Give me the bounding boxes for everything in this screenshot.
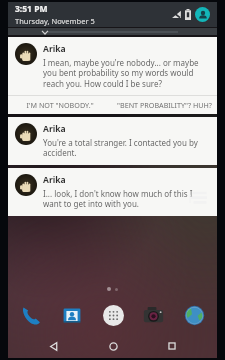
button[interactable]: User profile [195,7,210,22]
staticText: Arika [43,174,66,186]
staticText: 3:51 PM [15,3,48,15]
button[interactable]: "BENT PROBABILITY"? HUH? [112,100,217,110]
staticText: I'M NOT "NOBODY." [26,100,94,110]
staticText: I mean, maybe you're nobody... or maybe … [43,57,210,90]
staticText: Thursday, November 5 [15,16,95,26]
button[interactable]: Camera [140,302,166,328]
button[interactable]: Contacts [59,302,85,328]
button[interactable]: Arika [8,37,217,114]
button[interactable]: I'M NOT "NOBODY." [8,100,112,110]
button[interactable]: Home [98,335,128,357]
button[interactable]: Arika [8,168,217,216]
button[interactable] [8,28,217,35]
staticText: "BENT PROBABILITY"? HUH? [117,100,212,110]
button[interactable]: Recents [157,335,187,357]
staticText: I... look, I don't know how much of this… [43,188,210,210]
staticText: Arika [43,43,66,55]
button[interactable]: Phone [18,302,44,328]
button[interactable]: Arika [8,117,217,165]
button[interactable]: Back [38,335,68,357]
staticText: You're a total stranger. I contacted you… [43,137,210,159]
button[interactable]: All apps [100,302,126,328]
button[interactable]: Widget stack [189,190,209,206]
button[interactable]: Browser [181,302,207,328]
staticText: Arika [43,123,66,135]
